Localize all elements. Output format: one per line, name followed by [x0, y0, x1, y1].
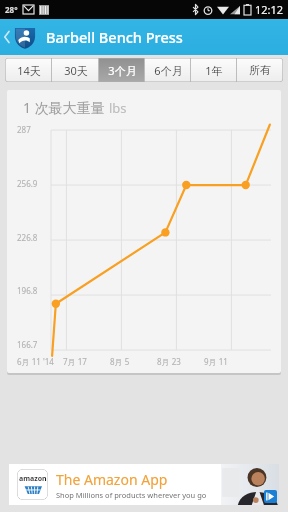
- staticText: 226.8: [17, 232, 38, 243]
- staticText: 所有: [249, 63, 271, 77]
- button[interactable]: Amazon App advertisement: [9, 464, 279, 505]
- staticText: 28°: [5, 4, 18, 15]
- staticText: 287: [17, 124, 31, 135]
- button[interactable]: 6个月: [145, 58, 191, 82]
- staticText: Barbell Bench Press: [46, 27, 183, 47]
- button[interactable]: 30天: [52, 58, 99, 82]
- button[interactable]: 1 次最大重量: [7, 90, 281, 373]
- staticText: 14天: [17, 63, 41, 78]
- staticText: Shop Millions of products wherever you g…: [56, 490, 207, 500]
- button[interactable]: 14天: [5, 58, 52, 82]
- button[interactable]: 所有: [237, 58, 283, 82]
- staticText: 1 次最大重量: [23, 98, 105, 117]
- staticText: 1年: [205, 63, 223, 78]
- staticText: 196.8: [17, 285, 38, 296]
- staticText: lbs: [109, 99, 127, 117]
- button[interactable]: Back: [0, 19, 39, 55]
- staticText: The Amazon App: [56, 470, 168, 489]
- staticText: 6个月: [154, 63, 183, 78]
- staticText: 30天: [64, 63, 88, 78]
- staticText: 3个月: [108, 63, 137, 78]
- button[interactable]: 3个月: [99, 58, 145, 82]
- staticText: 8月 23: [157, 356, 181, 367]
- staticText: 256.9: [17, 178, 38, 189]
- staticText: 7月 17: [63, 356, 87, 367]
- staticText: amazon: [19, 474, 47, 484]
- staticText: 8月 5: [110, 356, 130, 367]
- staticText: 166.7: [17, 339, 38, 350]
- staticText: 12:12: [255, 2, 284, 17]
- staticText: 6月 11 '14: [17, 356, 54, 367]
- staticText: 9月 11: [204, 356, 228, 367]
- button[interactable]: 1年: [191, 58, 237, 82]
